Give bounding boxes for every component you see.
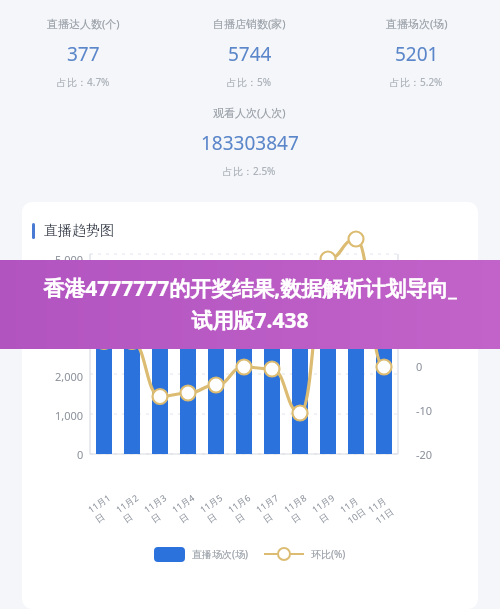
- staticText: 占比：5.2%: [390, 75, 443, 89]
- staticText: 占比：4.7%: [57, 75, 110, 89]
- staticText: 直播场次(场): [192, 547, 248, 561]
- staticText: 2,000: [55, 369, 84, 384]
- button[interactable]: 观看人次(人次): [166, 105, 333, 178]
- staticText: 11月6日: [225, 489, 263, 526]
- staticText: 11月4日: [169, 489, 207, 526]
- staticText: -10: [416, 403, 433, 418]
- staticText: 自播店销数(家): [213, 16, 286, 31]
- staticText: 5744: [228, 41, 272, 67]
- staticText: 环比(%): [311, 547, 346, 561]
- button[interactable]: 直播场次(场): [333, 16, 500, 89]
- staticText: 11月3日: [141, 489, 179, 526]
- staticText: 5,000: [55, 252, 84, 267]
- staticText: 4,000: [55, 291, 84, 306]
- button[interactable]: 直播达人数(个): [0, 16, 166, 89]
- staticText: 0: [416, 359, 423, 374]
- staticText: 占比：2.5%: [223, 164, 276, 178]
- staticText: 1,000: [55, 408, 84, 423]
- staticText: 直播趋势图: [44, 222, 114, 240]
- staticText: 11月7日: [253, 489, 291, 526]
- button[interactable]: 香港4777777的开奖结果,数据解析计划导向_试用版7.438: [0, 260, 500, 349]
- staticText: -20: [416, 447, 433, 462]
- staticText: 11月11日: [365, 489, 403, 526]
- staticText: 11月9日: [309, 489, 347, 526]
- staticText: 5201: [395, 41, 439, 67]
- staticText: 183303847: [201, 130, 299, 156]
- staticText: 0: [77, 447, 84, 462]
- button[interactable]: 自播店销数(家): [166, 16, 333, 89]
- staticText: 直播达人数(个): [47, 16, 120, 31]
- staticText: 20: [416, 270, 429, 285]
- staticText: 占比：5%: [227, 75, 272, 89]
- staticText: 直播场次(场): [386, 16, 448, 31]
- button[interactable]: 直播趋势图: [22, 202, 478, 609]
- staticText: 香港4777777的开奖结果,数据解析计划导向_试用版7.438: [36, 274, 464, 335]
- staticText: 377: [67, 41, 100, 67]
- staticText: 11月10日: [337, 489, 375, 526]
- staticText: 11月1日: [85, 489, 123, 526]
- staticText: 11月8日: [281, 489, 319, 526]
- staticText: 观看人次(人次): [213, 105, 286, 120]
- staticText: 11月5日: [197, 489, 235, 526]
- staticText: 11月2日: [113, 489, 151, 526]
